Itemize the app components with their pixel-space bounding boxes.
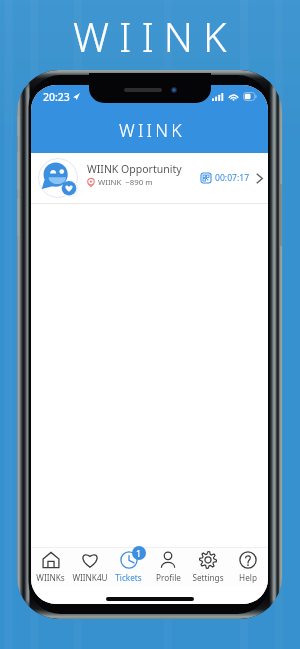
staticText: Tickets: [115, 572, 142, 583]
staticText: 1: [136, 547, 142, 559]
button[interactable]: WIINK4U: [70, 548, 109, 586]
staticText: Help: [239, 572, 257, 583]
staticText: Settings: [192, 572, 224, 583]
button[interactable]: WIINKs: [31, 548, 70, 586]
staticText: WIINKs: [36, 572, 65, 583]
staticText: WIINK: [73, 9, 237, 63]
staticText: 00:07:17: [215, 172, 250, 184]
staticText: 20:23: [43, 90, 70, 104]
staticText: WIINK: [119, 118, 185, 142]
staticText: Profile: [156, 572, 181, 583]
staticText: WIINK4U: [72, 572, 108, 583]
button[interactable]: WIINK Opportunity: [31, 153, 268, 203]
button[interactable]: Tickets: [109, 548, 148, 586]
staticText: WIINK ~890 m: [98, 177, 153, 188]
button[interactable]: Help: [228, 548, 268, 586]
button[interactable]: Profile: [148, 548, 188, 586]
button[interactable]: Settings: [188, 548, 228, 586]
staticText: WIINK Opportunity: [87, 162, 182, 176]
